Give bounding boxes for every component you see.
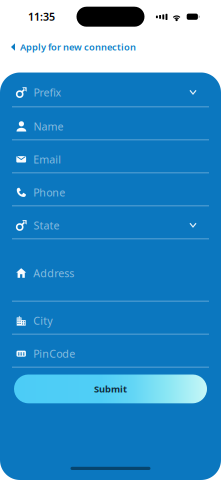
button[interactable]: Phone <box>0 173 221 206</box>
staticText: City <box>33 314 52 328</box>
button[interactable]: Apply for new connection <box>0 34 221 60</box>
button[interactable]: Address <box>0 239 221 302</box>
button[interactable]: State <box>0 206 221 239</box>
button[interactable]: Submit <box>14 374 207 403</box>
staticText: Email <box>33 152 61 166</box>
staticText: 11:35 <box>28 10 55 24</box>
staticText: Prefix <box>34 85 62 100</box>
button[interactable]: Prefix <box>0 72 221 107</box>
button[interactable]: Email <box>0 140 221 173</box>
button[interactable]: PinCode <box>0 335 221 368</box>
staticText: Name <box>34 119 64 133</box>
staticText: Address <box>33 266 74 280</box>
button[interactable]: Name <box>0 107 221 140</box>
button[interactable]: City <box>0 302 221 335</box>
staticText: Apply for new connection <box>20 41 136 53</box>
staticText: PinCode <box>33 347 75 361</box>
staticText: Phone <box>33 185 65 199</box>
staticText: State <box>34 218 60 232</box>
staticText: Submit <box>94 383 127 395</box>
